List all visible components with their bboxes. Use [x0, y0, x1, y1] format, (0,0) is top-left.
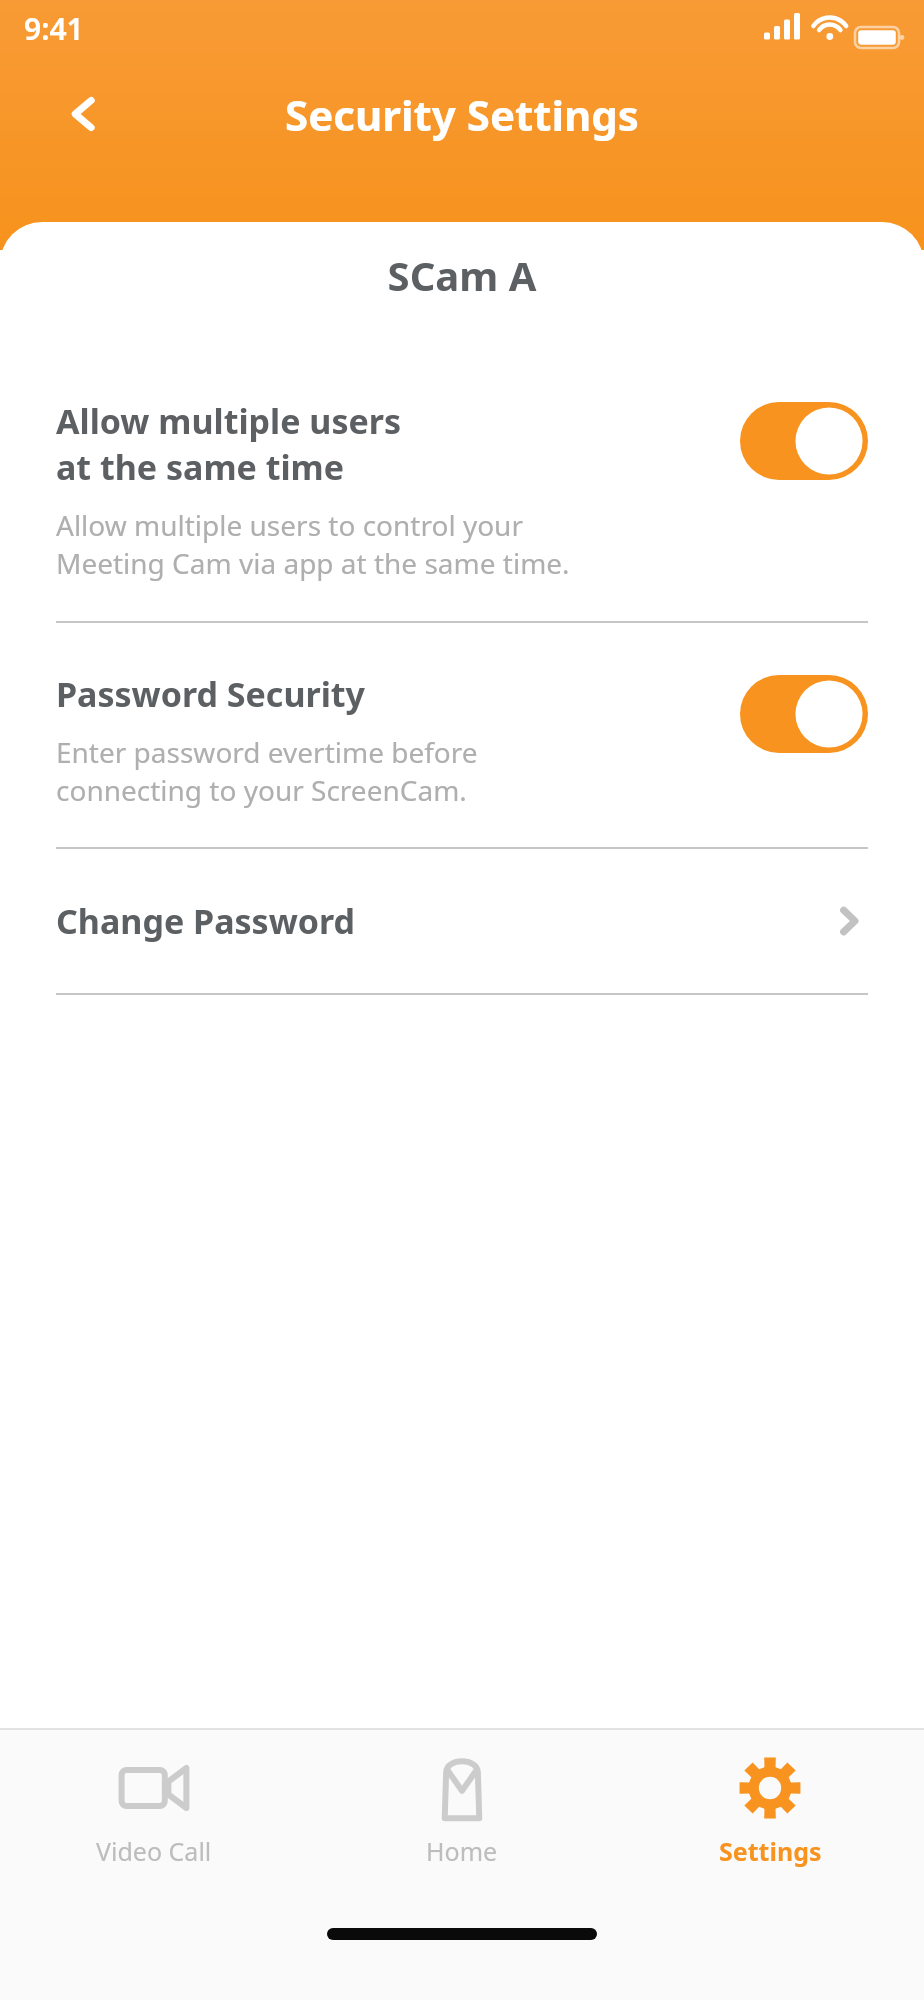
staticText: Allow multiple users to control your — [56, 506, 523, 544]
staticText: Security Settings — [285, 86, 639, 143]
staticText: 9:41 — [24, 8, 84, 49]
staticText: Password Security — [56, 671, 366, 717]
button[interactable]: Settings — [616, 1730, 924, 1928]
staticText: Enter password evertime before — [56, 733, 478, 771]
button[interactable]: Allow multiple users — [0, 398, 924, 582]
button[interactable]: Toggle — [740, 402, 868, 480]
staticText: SCam A — [0, 248, 924, 302]
staticText: Settings — [719, 1834, 822, 1868]
button[interactable]: Password Security — [0, 671, 924, 809]
staticText: Change Password — [56, 898, 355, 944]
staticText: connecting to your ScreenCam. — [56, 771, 467, 809]
button[interactable]: Video Call — [0, 1730, 308, 1928]
staticText: Allow multiple users — [56, 398, 402, 444]
staticText: at the same time — [56, 444, 345, 490]
staticText: Home — [426, 1834, 498, 1868]
button[interactable]: Back — [44, 74, 124, 154]
button[interactable]: Toggle — [740, 675, 868, 753]
button[interactable]: Home — [308, 1730, 616, 1928]
button[interactable]: Change Password — [0, 849, 924, 993]
staticText: Video Call — [96, 1834, 212, 1868]
staticText: Meeting Cam via app at the same time. — [56, 544, 570, 582]
